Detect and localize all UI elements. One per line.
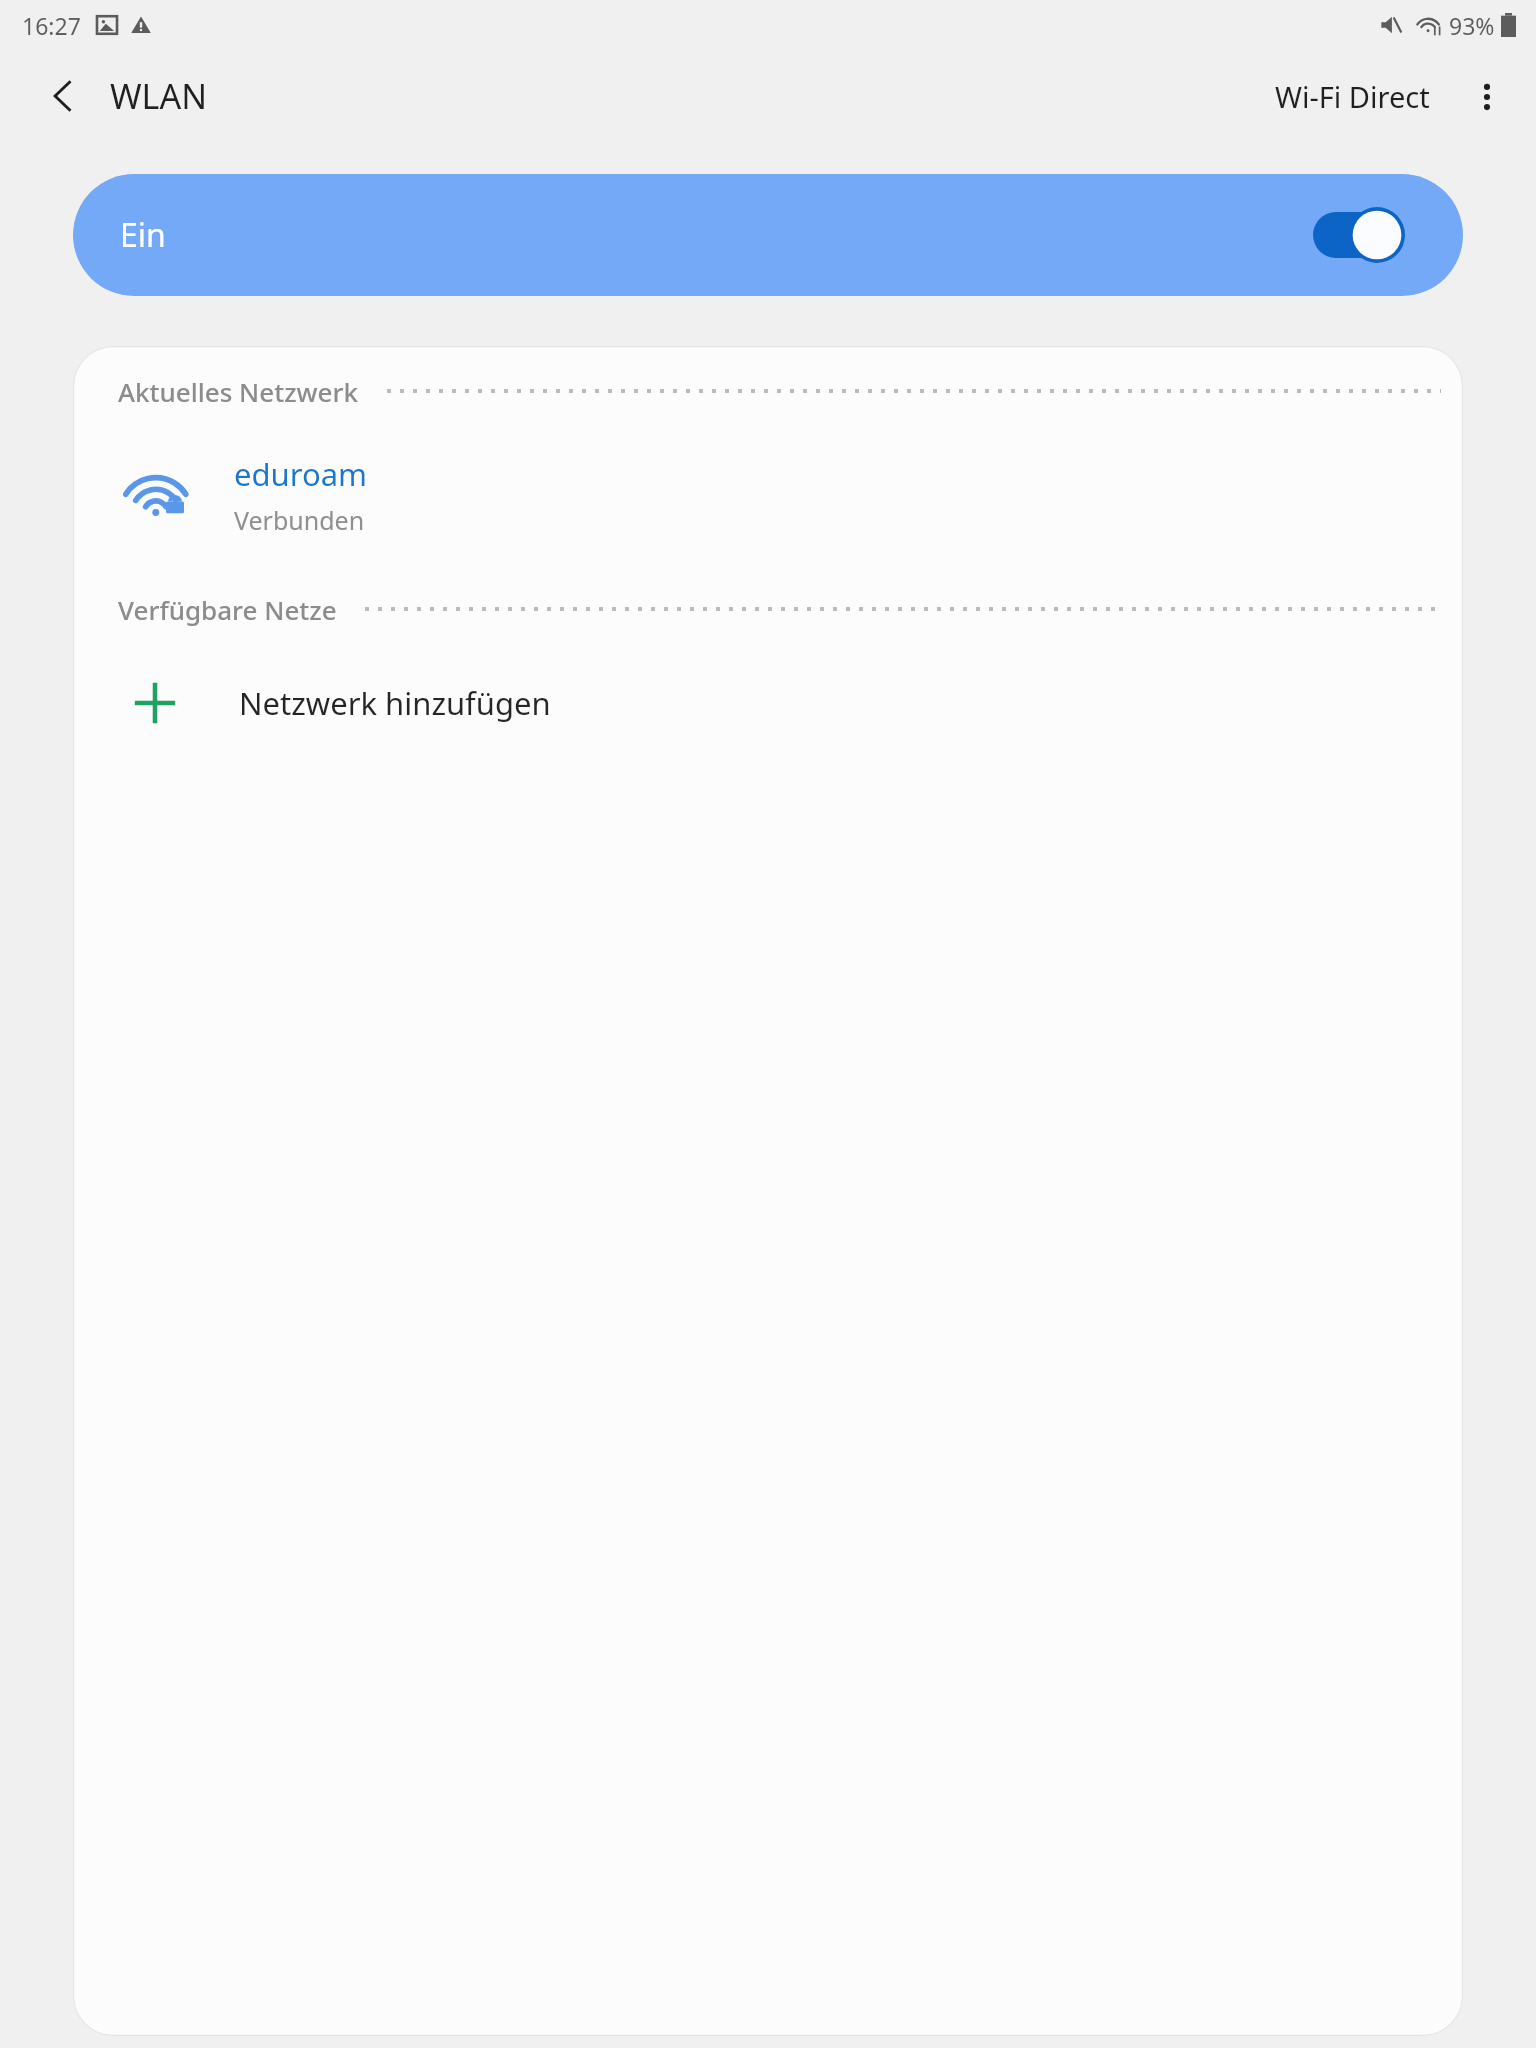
button[interactable]: eduroam <box>73 442 1463 548</box>
button[interactable]: Netzwerk hinzufügen <box>73 654 1463 752</box>
button[interactable]: Back <box>28 61 98 131</box>
button[interactable]: Wi-Fi Direct <box>1265 65 1440 128</box>
staticText: Verbunden <box>234 503 365 537</box>
button[interactable]: Ein <box>73 174 1463 296</box>
staticText: eduroam <box>234 453 368 495</box>
staticText: Verfügbare Netze <box>118 592 337 627</box>
staticText: WLAN <box>110 73 208 119</box>
staticText: 93% <box>1449 10 1495 41</box>
staticText: Wi-Fi Direct <box>1275 77 1430 116</box>
staticText: 16:27 <box>22 10 81 41</box>
staticText: Netzwerk hinzufügen <box>239 682 551 724</box>
staticText: Aktuelles Netzwerk <box>118 374 359 409</box>
staticText: Ein <box>120 213 166 257</box>
button[interactable]: More options <box>1458 68 1516 126</box>
